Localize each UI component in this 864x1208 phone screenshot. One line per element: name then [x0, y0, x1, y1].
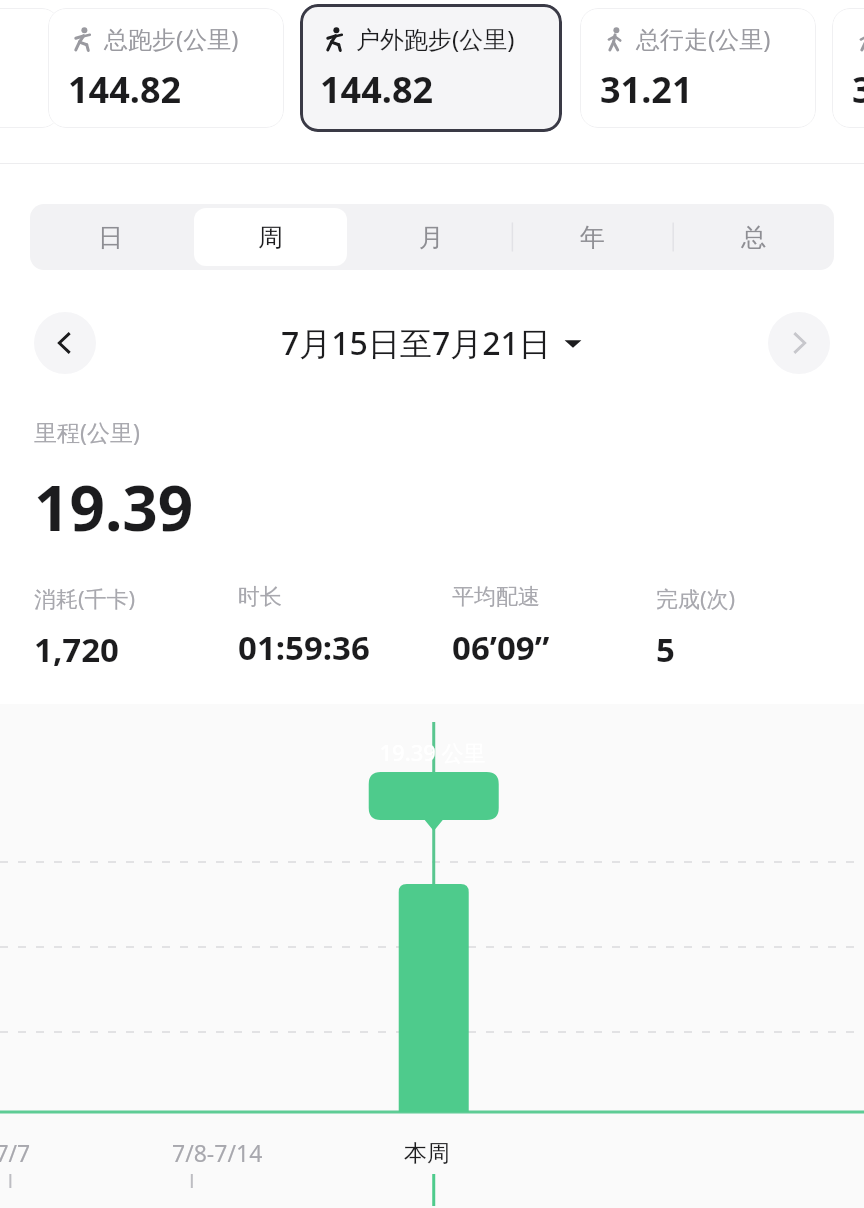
staticText: 消耗(千卡): [34, 583, 136, 613]
button[interactable]: Next week: [768, 312, 830, 374]
staticText: 周: [258, 222, 283, 253]
button[interactable]: 日: [34, 208, 186, 266]
staticText: 31.21: [600, 65, 693, 114]
staticText: 3.40: [852, 65, 864, 114]
staticText: 日: [98, 222, 123, 253]
staticText: 06’09”: [452, 625, 550, 670]
button[interactable]: 总跑步(公里): [48, 8, 284, 128]
staticText: 时长: [238, 583, 282, 611]
staticText: 19.39: [34, 465, 194, 549]
staticText: 144.82: [68, 65, 182, 114]
button[interactable]: 年: [516, 208, 669, 266]
button[interactable]: 户外跑步(公里): [300, 4, 562, 132]
button[interactable]: 总: [677, 208, 830, 266]
button[interactable]: Previous week: [34, 312, 96, 374]
staticText: 本周: [404, 1139, 450, 1168]
button[interactable]: 总行走(公里): [580, 8, 816, 128]
staticText: 月: [419, 222, 444, 253]
staticText: 144.82: [320, 65, 434, 114]
staticText: 里程(公里): [34, 416, 140, 447]
staticText: 年: [580, 222, 605, 253]
button[interactable]: 7月15日至7月21日: [281, 321, 583, 365]
staticText: 平均配速: [452, 583, 540, 611]
button[interactable]: 总骑行(公里): [832, 8, 864, 128]
staticText: 完成(次): [656, 583, 736, 613]
button[interactable]: 周: [194, 208, 347, 266]
staticText: 总: [741, 222, 766, 253]
staticText: 7/8-7/14: [172, 1137, 263, 1168]
staticText: 5: [656, 627, 675, 672]
staticText: -7/7: [0, 1137, 31, 1168]
staticText: 01:59:36: [238, 625, 370, 670]
staticText: 总行走(公里): [636, 22, 771, 55]
staticText: 19.39 公里: [379, 737, 486, 767]
staticText: 1,720: [34, 627, 119, 672]
staticText: 总跑步(公里): [104, 22, 239, 55]
staticText: 户外跑步(公里): [356, 22, 515, 55]
staticText: 7月15日至7月21日: [281, 321, 551, 365]
button[interactable]: 月: [355, 208, 508, 266]
